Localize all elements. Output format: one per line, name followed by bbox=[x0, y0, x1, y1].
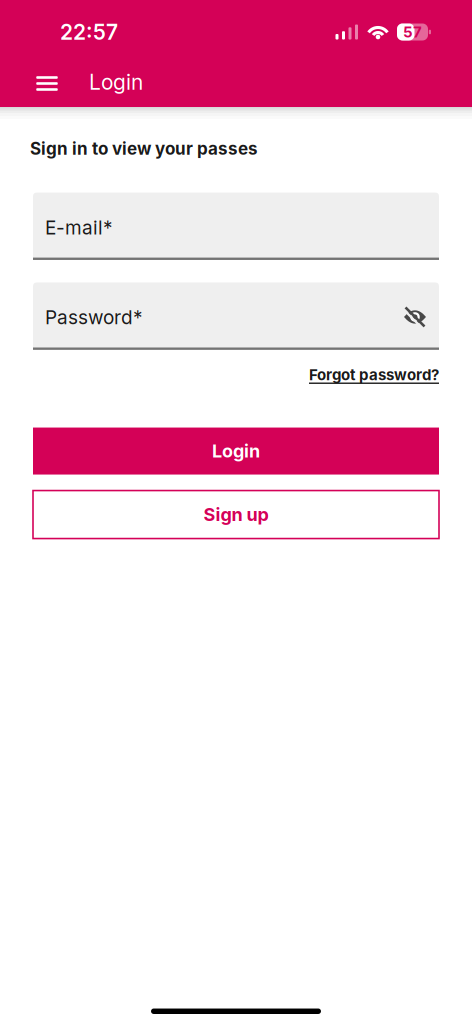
button[interactable]: Login bbox=[33, 428, 439, 475]
button[interactable]: Forgot password? bbox=[309, 366, 439, 384]
staticText: Password* bbox=[45, 306, 143, 329]
staticText: Login bbox=[89, 70, 143, 94]
staticText: 22:57 bbox=[60, 20, 118, 44]
button[interactable]: Show password bbox=[404, 305, 426, 324]
staticText: Forgot password? bbox=[309, 366, 439, 384]
staticText: Sign in to view your passes bbox=[30, 138, 258, 159]
button[interactable]: Menu bbox=[36, 74, 58, 89]
staticText: E-mail* bbox=[45, 216, 113, 239]
staticText: Sign up bbox=[203, 504, 268, 525]
staticText: Login bbox=[212, 440, 260, 462]
button[interactable]: Sign up bbox=[33, 491, 439, 539]
staticText: 57 bbox=[403, 23, 422, 41]
